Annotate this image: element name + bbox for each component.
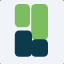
button[interactable]: App logo [0, 0, 64, 64]
